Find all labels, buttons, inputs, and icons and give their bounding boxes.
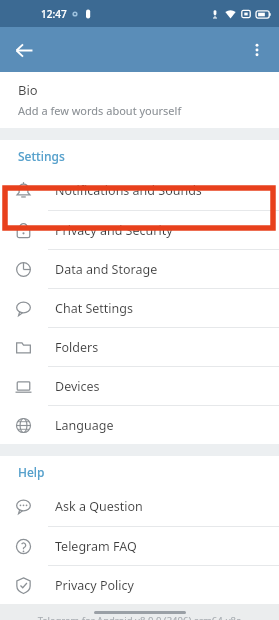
button[interactable]: Bio — [0, 72, 279, 128]
staticText: Data and Storage — [55, 261, 158, 278]
button[interactable]: Data and Storage — [0, 250, 279, 288]
button[interactable]: Chat Settings — [0, 289, 279, 327]
button[interactable]: Privacy Policy — [0, 566, 279, 604]
staticText: Folders — [55, 339, 99, 356]
staticText: Privacy Policy — [55, 577, 134, 594]
staticText: Ask a Question — [55, 498, 143, 515]
staticText: Settings — [18, 148, 65, 164]
button[interactable]: Language — [0, 406, 279, 444]
staticText: Help — [18, 464, 45, 480]
button[interactable]: Back — [6, 32, 42, 68]
button[interactable]: Devices — [0, 367, 279, 405]
button[interactable]: Ask a Question — [0, 487, 279, 526]
staticText: Chat Settings — [55, 300, 133, 317]
staticText: Privacy and Security — [55, 222, 173, 239]
staticText: Telegram for Android v8.0.0 (2406) arm64… — [0, 614, 279, 620]
staticText: Language — [55, 417, 114, 434]
staticText: 12:47 — [41, 7, 67, 21]
button[interactable]: Notifications and Sounds — [0, 171, 279, 210]
staticText: Telegram FAQ — [55, 538, 137, 555]
staticText: Add a few words about yourself — [18, 103, 182, 118]
button[interactable]: More options — [239, 32, 275, 68]
button[interactable]: Privacy and Security — [0, 211, 279, 249]
button[interactable]: Folders — [0, 328, 279, 366]
button[interactable]: Telegram FAQ — [0, 527, 279, 565]
staticText: Notifications and Sounds — [55, 182, 202, 199]
staticText: Bio — [18, 81, 38, 99]
staticText: Devices — [55, 378, 100, 395]
